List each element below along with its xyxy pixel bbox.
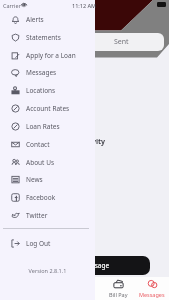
staticText: Apply for a Loan	[26, 51, 76, 60]
staticText: News	[26, 175, 43, 184]
staticText: Alerts	[26, 15, 44, 24]
staticText: About Us	[26, 158, 55, 167]
button[interactable]: Messages	[0, 63, 95, 81]
button[interactable]: Statements	[0, 28, 95, 46]
button[interactable]: Loan Rates	[0, 117, 95, 135]
staticText: Account Rates	[26, 104, 70, 113]
staticText: Facebook	[26, 193, 56, 202]
button[interactable]: Apply for a Loan	[0, 46, 95, 64]
staticText: Version 2.8.1.1	[0, 267, 95, 274]
staticText: Log Out	[26, 239, 51, 248]
button[interactable]: Messages	[135, 277, 169, 300]
button[interactable]: Contact	[0, 135, 95, 153]
staticText: Statements	[26, 33, 61, 42]
button[interactable]: Facebook	[0, 188, 95, 206]
staticText: Sent	[114, 37, 129, 47]
staticText: 11:12 AM	[72, 2, 97, 9]
staticText: Account Activity	[48, 137, 106, 147]
staticText: Messages	[139, 291, 165, 298]
staticText: Messages	[26, 68, 57, 77]
staticText: Locations	[26, 86, 56, 95]
staticText: Contact	[26, 140, 50, 149]
button[interactable]: Twitter	[0, 206, 95, 224]
button[interactable]: Transfer	[67, 277, 101, 300]
button[interactable]: Log Out	[0, 234, 95, 252]
button[interactable]: About Us	[0, 153, 95, 171]
button[interactable]: Locations	[0, 81, 95, 99]
staticText: Carrier	[3, 2, 21, 9]
button[interactable]: News	[0, 170, 95, 188]
staticText: Bill Pay	[109, 291, 128, 298]
button[interactable]: Account Rates	[0, 99, 95, 117]
staticText: Message	[82, 261, 110, 270]
staticText: Twitter	[26, 211, 48, 220]
button[interactable]: Alerts	[0, 10, 95, 28]
staticText: Loan Rates	[26, 122, 60, 131]
button[interactable]: Bill Pay	[101, 277, 135, 300]
